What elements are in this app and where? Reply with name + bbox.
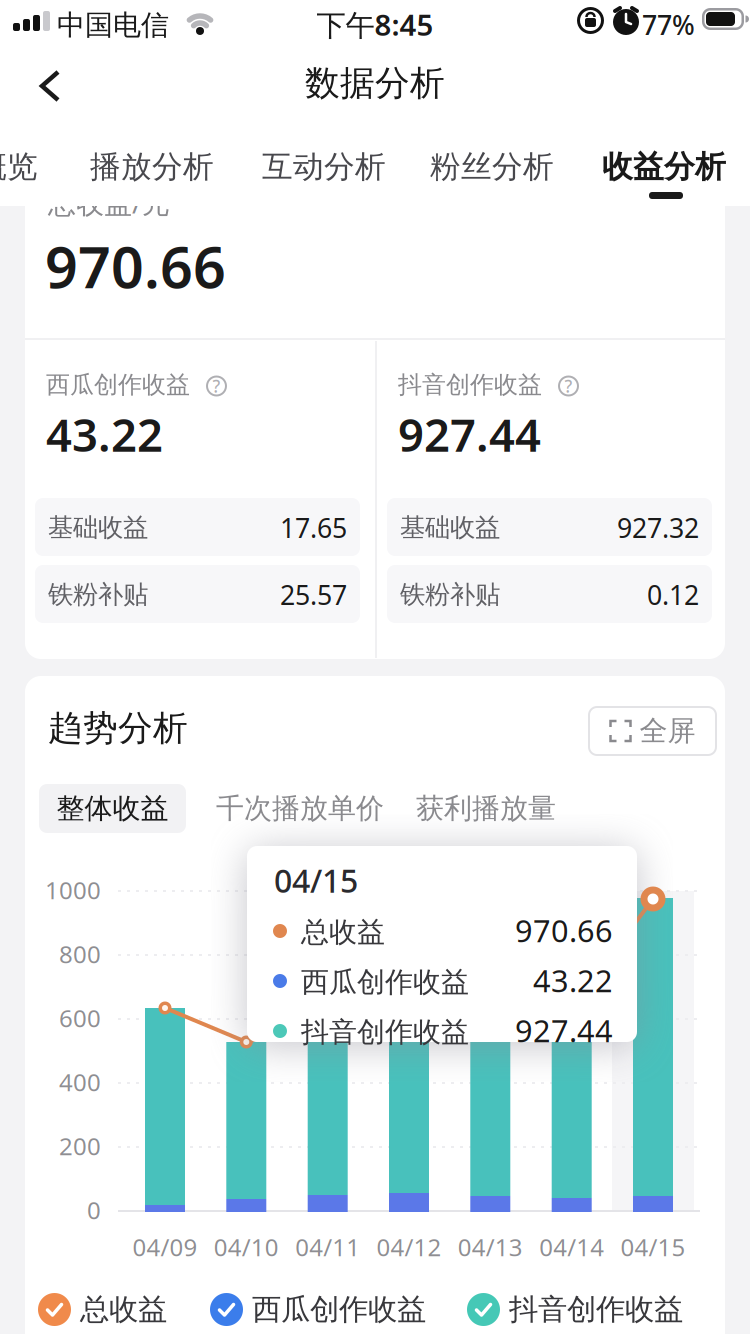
staticText: 总收益 <box>80 1291 167 1327</box>
staticText: 800 <box>59 938 101 970</box>
staticText: 927.44 <box>398 404 541 464</box>
staticText: 04/15 <box>620 1231 685 1263</box>
staticText: ? <box>564 374 572 397</box>
staticText: 抖音创作收益 <box>398 370 542 399</box>
button[interactable]: 整体收益 <box>39 784 186 833</box>
staticText: 西瓜创作收益 <box>301 965 469 999</box>
staticText: ? <box>212 374 220 397</box>
staticText: 04/09 <box>132 1231 197 1263</box>
staticText: 25.57 <box>280 577 347 612</box>
button[interactable]: 播放分析 <box>90 148 214 186</box>
button[interactable]: 互动分析 <box>262 148 386 186</box>
staticText: 整体收益 <box>56 791 168 826</box>
staticText: 下午8:45 <box>316 5 433 44</box>
staticText: 获利播放量 <box>416 791 556 826</box>
staticText: 04/11 <box>295 1231 360 1263</box>
staticText: 基础收益 <box>400 512 500 543</box>
staticText: 0 <box>87 1194 101 1226</box>
staticText: 1000 <box>45 874 101 906</box>
staticText: 970.66 <box>515 910 613 951</box>
staticText: 927.44 <box>515 1010 613 1051</box>
staticText: 抖音创作收益 <box>301 1015 469 1049</box>
staticText: 总收益 <box>301 915 385 949</box>
staticText: 千次播放单价 <box>216 791 384 826</box>
button[interactable]: 总收益 <box>38 1291 167 1327</box>
staticText: 04/15 <box>274 859 358 901</box>
staticText: 970.66 <box>45 228 226 304</box>
button[interactable]: 获利播放量 <box>416 784 556 833</box>
staticText: 铁粉补贴 <box>400 579 500 610</box>
staticText: 04/10 <box>214 1231 279 1263</box>
staticText: 收益分析 <box>602 148 726 186</box>
staticText: 04/13 <box>458 1231 523 1263</box>
staticText: 927.32 <box>617 510 699 545</box>
staticText: 播放分析 <box>90 148 214 186</box>
button[interactable]: ? <box>558 375 579 396</box>
staticText: 77% <box>642 7 695 42</box>
button[interactable]: 西瓜创作收益 <box>210 1291 426 1327</box>
staticText: 200 <box>59 1130 101 1162</box>
button[interactable] <box>38 70 64 102</box>
staticText: 基础收益 <box>48 512 148 543</box>
staticText: 西瓜创作收益 <box>252 1291 426 1327</box>
staticText: 趋势分析 <box>48 707 188 750</box>
button[interactable]: ? <box>206 375 227 396</box>
button[interactable]: 千次播放单价 <box>216 784 384 833</box>
staticText: 铁粉补贴 <box>48 579 148 610</box>
button[interactable]: 收益分析 <box>602 148 726 186</box>
staticText: 抖音创作收益 <box>509 1291 683 1327</box>
staticText: 互动分析 <box>262 148 386 186</box>
staticText: 概览 <box>0 148 38 186</box>
staticText: 04/12 <box>376 1231 441 1263</box>
button[interactable]: 全屏 <box>588 706 717 756</box>
button[interactable]: 概览 <box>0 148 38 186</box>
staticText: 0.12 <box>647 577 699 612</box>
staticText: 17.65 <box>280 510 347 545</box>
staticText: 数据分析 <box>305 62 445 105</box>
staticText: 04/14 <box>539 1231 604 1263</box>
staticText: 总收益/元 <box>48 184 170 221</box>
staticText: 600 <box>59 1002 101 1034</box>
staticText: 400 <box>59 1066 101 1098</box>
staticText: 43.22 <box>46 404 163 464</box>
staticText: 中国电信 <box>57 8 169 42</box>
staticText: 西瓜创作收益 <box>46 370 190 399</box>
staticText: 全屏 <box>639 714 695 748</box>
staticText: 粉丝分析 <box>430 148 554 186</box>
button[interactable]: 抖音创作收益 <box>467 1291 683 1327</box>
button[interactable]: 粉丝分析 <box>430 148 554 186</box>
staticText: 43.22 <box>533 960 613 1001</box>
